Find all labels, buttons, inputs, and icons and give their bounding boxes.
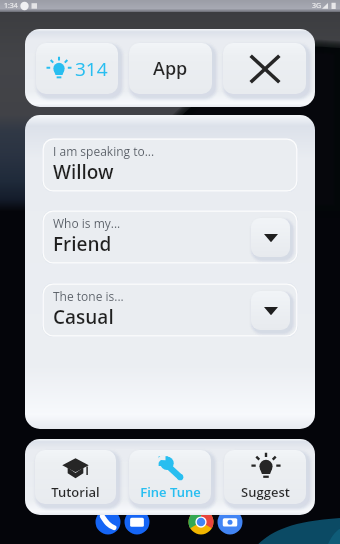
button[interactable]: 314 bbox=[36, 43, 118, 94]
button[interactable]: Suggest bbox=[224, 450, 306, 504]
staticText: Willow bbox=[53, 159, 114, 185]
button[interactable]: App bbox=[129, 43, 212, 94]
staticText: The tone is... bbox=[53, 288, 124, 304]
staticText: 1:34 bbox=[4, 1, 18, 11]
button[interactable]: Close bbox=[223, 43, 306, 94]
staticText: App bbox=[153, 56, 188, 81]
button[interactable]: Fine Tune bbox=[129, 450, 211, 504]
staticText: 3G bbox=[312, 1, 322, 11]
staticText: I am speaking to... bbox=[53, 143, 155, 159]
staticText: 314 bbox=[75, 56, 108, 82]
button[interactable]: Open dropdown bbox=[251, 218, 290, 257]
button[interactable]: I am speaking to... bbox=[42, 138, 298, 192]
staticText: Who is my... bbox=[53, 215, 121, 231]
staticText: Fine Tune bbox=[140, 483, 201, 501]
button[interactable]: Tutorial bbox=[35, 450, 116, 504]
staticText: Friend bbox=[53, 231, 112, 257]
button[interactable]: Open dropdown bbox=[251, 291, 290, 330]
staticText: Casual bbox=[53, 304, 114, 330]
staticText: Suggest bbox=[241, 483, 290, 501]
staticText: Tutorial bbox=[51, 483, 100, 501]
button[interactable]: Who is my... bbox=[42, 210, 298, 264]
button[interactable]: The tone is... bbox=[42, 283, 298, 337]
